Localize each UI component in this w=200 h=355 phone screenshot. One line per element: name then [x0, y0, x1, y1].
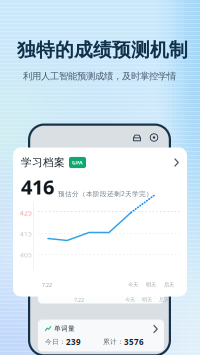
button[interactable]: 学习档案 [13, 147, 171, 161]
button[interactable]: 单词量 [38, 319, 164, 351]
staticText: 后天 [159, 296, 169, 303]
staticText: 明天 [142, 296, 152, 303]
staticText: 416 [21, 173, 54, 200]
staticText: GPA [72, 159, 83, 166]
staticText: 今天 [125, 296, 135, 303]
staticText: 明天 [146, 281, 156, 288]
staticText: 后天 [164, 281, 174, 288]
staticText: 405 [20, 250, 32, 259]
staticText: 7.22 [42, 281, 52, 289]
staticText: 239 [66, 336, 81, 347]
staticText: 学习档案 [21, 156, 65, 169]
staticText: 单词量 [54, 324, 75, 333]
staticText: 425 [20, 208, 32, 217]
staticText: 今日： [45, 338, 66, 346]
staticText: 独特的成绩预测机制 [17, 38, 188, 61]
staticText: 今天 [128, 281, 138, 288]
staticText: 3576 [124, 336, 144, 347]
staticText: 累计： [103, 338, 124, 346]
staticText: 415 [20, 229, 32, 238]
staticText: 预估分（本阶段还剩2天学完） [58, 189, 153, 198]
staticText: 7.22 [74, 296, 84, 304]
staticText: 利用人工智能预测成绩，及时掌控学情 [23, 70, 176, 82]
